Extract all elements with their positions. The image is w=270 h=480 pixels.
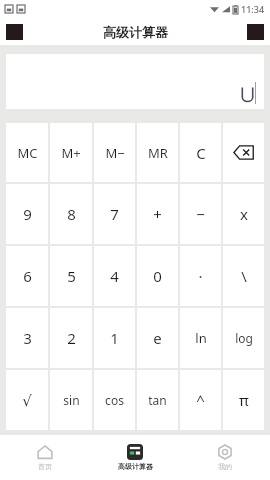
staticText: 6 [23, 266, 32, 286]
staticText: ln [195, 329, 207, 347]
button[interactable]: 2 [50, 308, 92, 368]
button[interactable]: ln [180, 308, 221, 368]
staticText: cos [105, 392, 124, 408]
staticText: − [196, 204, 205, 224]
staticText: 9 [23, 204, 32, 224]
button[interactable]: C [180, 123, 221, 182]
staticText: log [235, 330, 253, 346]
button[interactable]: 6 [6, 246, 48, 306]
staticText: 首页 [38, 462, 52, 471]
button[interactable]: tan [137, 370, 178, 430]
button[interactable]: Advanced calculator [90, 435, 180, 480]
staticText: 8 [67, 204, 76, 224]
button[interactable]: 9 [6, 184, 48, 244]
staticText: 2 [67, 328, 76, 348]
button[interactable]: · [180, 246, 221, 306]
staticText: MC [17, 144, 38, 162]
button[interactable] [6, 54, 264, 109]
staticText: MR [148, 144, 168, 162]
other: Profile settings [217, 444, 233, 460]
button[interactable]: cos [94, 370, 135, 430]
staticText: tan [148, 392, 167, 408]
staticText: 高级计算器 [103, 24, 168, 40]
staticText: x [240, 204, 248, 224]
button[interactable]: − [180, 184, 221, 244]
staticText: 高级计算器 [118, 462, 153, 471]
button[interactable]: M+ [50, 123, 92, 182]
staticText: 5 [67, 266, 76, 286]
button[interactable]: Backspace [223, 123, 264, 182]
button[interactable]: e [137, 308, 178, 368]
staticText: 0 [153, 266, 162, 286]
staticText: + [153, 204, 162, 224]
button[interactable]: 1 [94, 308, 135, 368]
staticText: · [198, 266, 203, 286]
staticText: 我的 [218, 462, 232, 471]
staticText: 4 [110, 266, 119, 286]
staticText: ^ [196, 390, 205, 410]
button[interactable]: M− [94, 123, 135, 182]
button[interactable]: √ [6, 370, 48, 430]
staticText: M− [105, 144, 125, 162]
staticText: e [153, 328, 162, 348]
button[interactable]: + [137, 184, 178, 244]
button[interactable]: Profile settings [180, 435, 270, 480]
staticText: 11:34 [241, 3, 265, 15]
staticText: 3 [23, 328, 32, 348]
staticText: √ [22, 392, 32, 409]
button[interactable]: 3 [6, 308, 48, 368]
button[interactable]: \ [223, 246, 264, 306]
staticText: 1 [110, 328, 119, 348]
button[interactable]: x [223, 184, 264, 244]
button[interactable]: π [223, 370, 264, 430]
staticText: π [239, 390, 249, 410]
button[interactable]: ^ [180, 370, 221, 430]
button[interactable]: log [223, 308, 264, 368]
button[interactable]: Home [0, 435, 90, 480]
staticText: \ [241, 266, 247, 286]
staticText: M+ [61, 144, 81, 162]
button[interactable]: 5 [50, 246, 92, 306]
button[interactable]: sin [50, 370, 92, 430]
staticText: sin [63, 392, 80, 408]
other: Home [37, 444, 53, 460]
staticText: 7 [110, 204, 119, 224]
staticText: C [196, 143, 206, 163]
button[interactable]: 4 [94, 246, 135, 306]
button[interactable]: 8 [50, 184, 92, 244]
other: Advanced calculator [127, 444, 143, 460]
button[interactable]: MC [6, 123, 48, 182]
button[interactable]: 0 [137, 246, 178, 306]
button[interactable]: MR [137, 123, 178, 182]
button[interactable]: 7 [94, 184, 135, 244]
